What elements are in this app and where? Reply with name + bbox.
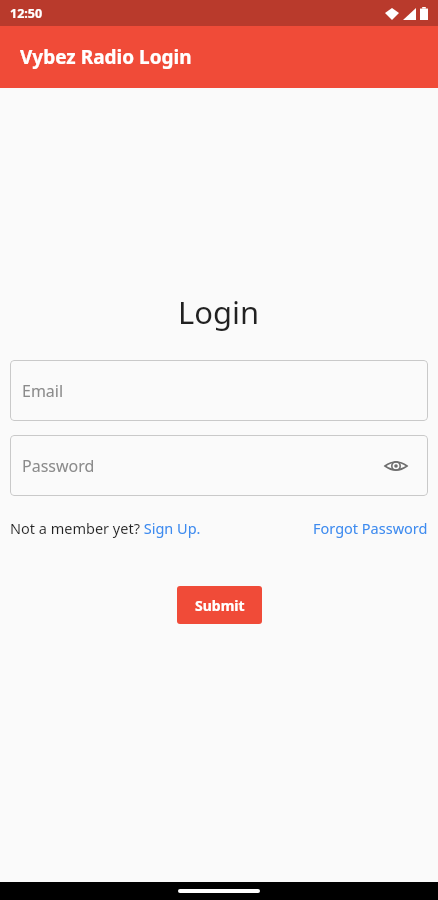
staticText: Email <box>22 380 64 402</box>
button[interactable]: Email <box>10 360 428 421</box>
staticText: Vybez Radio Login <box>20 44 192 70</box>
button[interactable]: Password <box>10 435 428 496</box>
staticText: 12:50 <box>10 5 43 22</box>
staticText: Login <box>178 291 260 333</box>
button[interactable]: Not a member yet? Sign Up. <box>10 518 201 538</box>
button[interactable]: Show password <box>380 450 412 482</box>
button[interactable]: Submit <box>177 586 262 624</box>
staticText: Not a member yet? Sign Up. <box>10 518 201 538</box>
button[interactable]: Forgot Password <box>313 518 428 538</box>
staticText: Forgot Password <box>313 518 428 538</box>
staticText: Submit <box>195 596 245 615</box>
staticText: Password <box>22 455 95 477</box>
